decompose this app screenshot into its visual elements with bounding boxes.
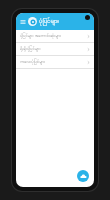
button[interactable]: Menu bbox=[18, 17, 28, 27]
button[interactable]: ကလေးပုံပြင်များ bbox=[16, 56, 94, 68]
staticText: ရိုးရိုးပုံပြင်များ bbox=[20, 46, 41, 52]
button[interactable]: Upload bbox=[77, 170, 89, 182]
staticText: ကလေးပုံပြင်များ bbox=[20, 59, 46, 65]
button[interactable]: ပုံပြင်များ အကောင်းဆုံးများ bbox=[16, 30, 94, 42]
staticText: ပုံပြင်များ bbox=[39, 16, 60, 27]
staticText: ပုံပြင်များ အကောင်းဆုံးများ bbox=[20, 33, 62, 40]
button[interactable]: ရိုးရိုးပုံပြင်များ bbox=[16, 43, 94, 55]
